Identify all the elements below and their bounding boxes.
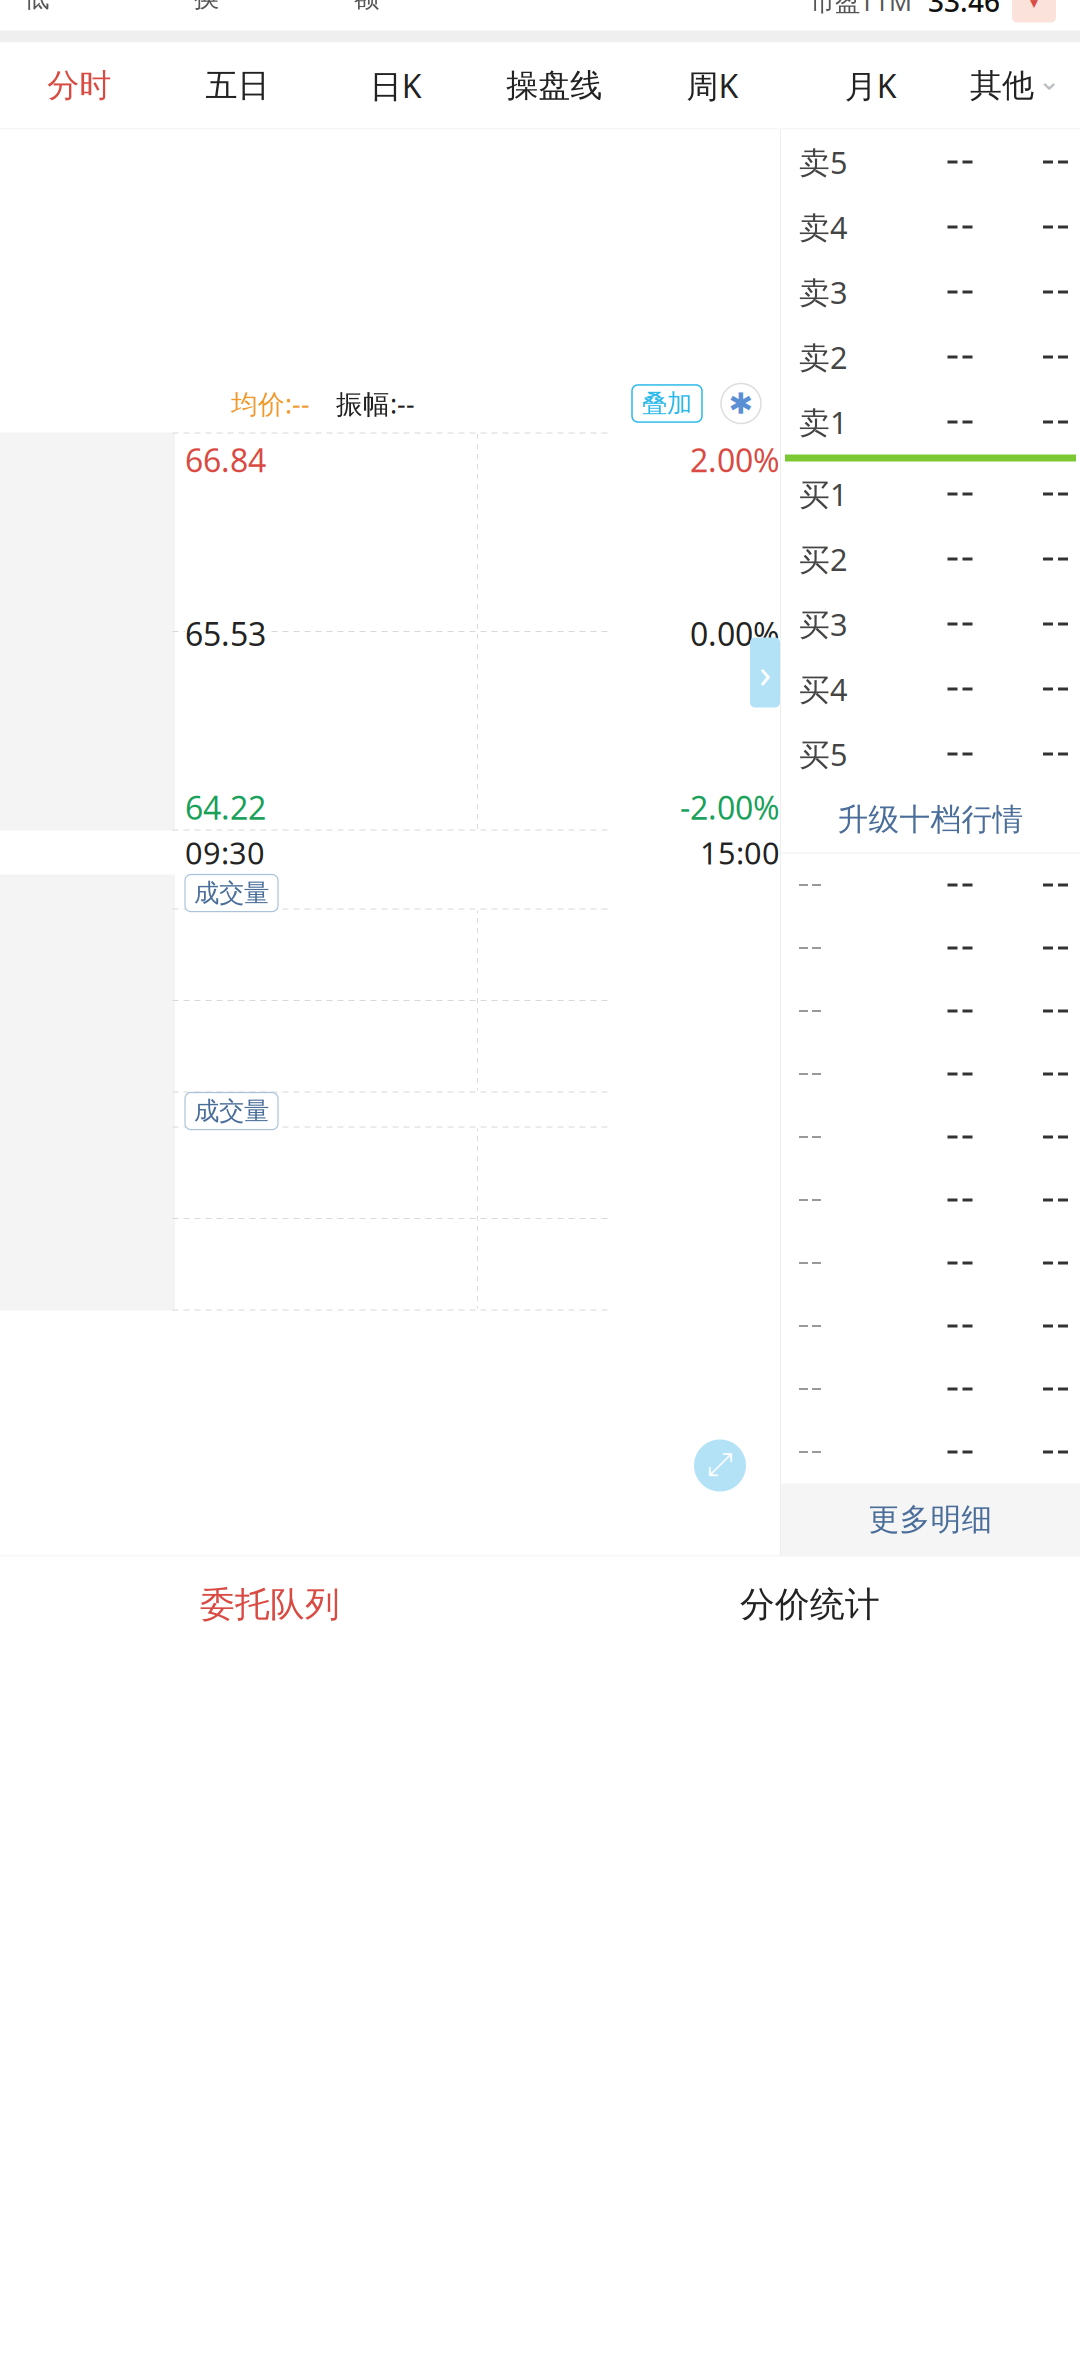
- staticText: 65.53: [185, 612, 266, 655]
- staticText: ▾: [1030, 0, 1038, 12]
- button[interactable]: 卖5: [781, 129, 1080, 786]
- staticText: 买5: [799, 734, 848, 774]
- staticText: 卖1: [799, 402, 848, 442]
- staticText: 买2: [799, 539, 848, 579]
- staticText: 成交量: [194, 1095, 269, 1127]
- staticText: 分时: [47, 66, 111, 105]
- button[interactable]: 更多明细: [781, 1483, 1080, 1555]
- staticText: 2.00%: [690, 438, 780, 481]
- button[interactable]: 五日: [158, 42, 317, 128]
- staticText: 委托队列: [200, 1583, 340, 1626]
- staticText: 市盈TTM: [810, 0, 912, 18]
- staticText: 买1: [799, 474, 848, 514]
- button[interactable]: 设置: [716, 378, 766, 428]
- staticText: 五日: [205, 66, 269, 105]
- button[interactable]: 分时: [0, 42, 158, 128]
- staticText: 09:30: [185, 832, 265, 873]
- staticText: 卖3: [799, 272, 848, 312]
- button[interactable]: 叠加: [632, 385, 702, 422]
- button[interactable]: 操盘线: [475, 42, 633, 128]
- staticText: 振幅:--: [336, 386, 415, 421]
- staticText: 月K: [845, 64, 897, 107]
- staticText: 均价:--: [231, 386, 310, 421]
- staticText: 卖2: [799, 337, 848, 377]
- staticText: ✱: [728, 387, 753, 420]
- staticText: 卖5: [799, 142, 848, 182]
- staticText: 升级十档行情: [837, 801, 1023, 838]
- staticText: ⤢: [707, 1450, 733, 1481]
- staticText: 换: [194, 0, 219, 14]
- button[interactable]: 分价统计: [540, 1556, 1080, 1652]
- staticText: 低: [24, 0, 49, 14]
- staticText: 成交量: [194, 877, 269, 909]
- staticText: 叠加: [642, 388, 692, 419]
- staticText: 66.84: [185, 438, 266, 481]
- staticText: 买4: [799, 669, 848, 709]
- button[interactable]: 升级十档行情: [781, 786, 1080, 852]
- staticText: 额: [354, 0, 379, 14]
- staticText: 日K: [370, 64, 422, 107]
- staticText: 操盘线: [506, 66, 602, 105]
- button[interactable]: 全屏: [690, 1435, 750, 1495]
- staticText: ⌄: [1038, 65, 1060, 96]
- staticText: 0.00%: [690, 612, 780, 655]
- button[interactable]: 其他: [950, 42, 1080, 128]
- staticText: ›: [759, 646, 771, 699]
- button[interactable]: 委托队列: [0, 1556, 540, 1652]
- staticText: 周K: [686, 64, 738, 107]
- staticText: 分价统计: [740, 1583, 880, 1626]
- staticText: 卖4: [799, 207, 848, 247]
- staticText: 其他: [970, 66, 1034, 105]
- button[interactable]: 周K: [633, 42, 792, 128]
- button[interactable]: 盘: [1012, 0, 1056, 22]
- button[interactable]: 月K: [792, 42, 950, 128]
- button[interactable]: 日K: [317, 42, 475, 128]
- staticText: 更多明细: [868, 1501, 992, 1538]
- staticText: 15:00: [700, 832, 780, 873]
- staticText: 64.22: [185, 786, 266, 828]
- staticText: -2.00%: [680, 786, 780, 828]
- button[interactable]: 展开: [750, 637, 780, 707]
- staticText: 33.46: [928, 0, 1000, 20]
- staticText: 买3: [799, 604, 848, 644]
